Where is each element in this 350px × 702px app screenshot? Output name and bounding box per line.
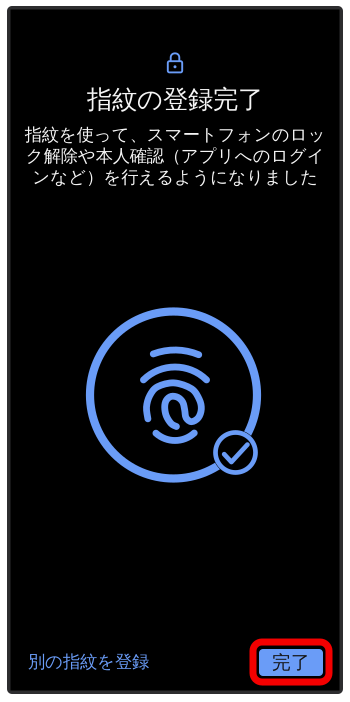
staticText: 指紋の登録完了 (87, 84, 263, 115)
staticText: 指紋を使って、スマートフォンのロック解除や本人確認（アプリへのログインなど）を行… (24, 124, 325, 188)
staticText: 完了 (272, 651, 310, 674)
button[interactable]: 別の指紋を登録 (28, 651, 149, 672)
staticText: 別の指紋を登録 (28, 651, 149, 672)
button[interactable]: 完了 (259, 649, 323, 676)
